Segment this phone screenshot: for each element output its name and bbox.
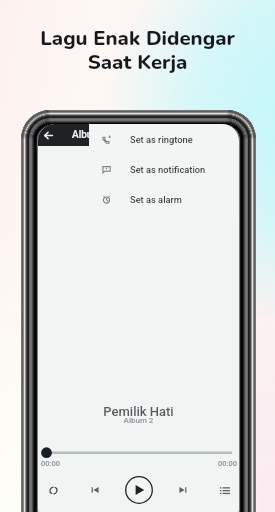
button[interactable]: Previous [85, 480, 105, 500]
button[interactable]: Play [125, 476, 153, 504]
button[interactable]: Back [38, 125, 58, 145]
staticText: 00:00 [218, 459, 238, 468]
staticText: Set as notification [130, 164, 206, 175]
staticText: Album 2 [38, 416, 239, 425]
staticText: Set as ringtone [130, 134, 193, 145]
button[interactable]: Set as ringtone [89, 124, 239, 154]
staticText: Set as alarm [130, 194, 182, 205]
staticText: Lagu Enak Didengar Saat Kerja [0, 24, 275, 76]
staticText: Album [72, 129, 102, 141]
staticText: Pemilik Hati [38, 404, 239, 419]
button[interactable]: Set as notification [89, 154, 239, 184]
staticText: 00:00 [41, 459, 61, 468]
button[interactable]: Set as alarm [89, 184, 239, 214]
button[interactable]: Playlist [215, 480, 235, 500]
button[interactable]: Repeat [43, 480, 63, 500]
button[interactable]: Next [173, 480, 193, 500]
